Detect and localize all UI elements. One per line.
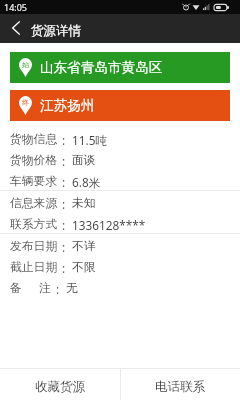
staticText: 车辆要求 [10,174,58,189]
staticText: 未知 [72,196,96,211]
staticText: 无 [66,281,78,296]
button[interactable]: 车辆要求 [10,171,230,192]
button[interactable]: 联系方式 [10,214,230,235]
staticText: 货源详情 [31,23,81,39]
staticText: 收藏货源 [35,379,86,395]
button[interactable]: 备 [10,278,230,299]
staticText: 联系方式 [10,217,58,232]
staticText: 江苏扬州 [40,97,95,114]
staticText: 备 [10,281,22,296]
staticText: 14:05 [4,1,28,13]
staticText: 不限 [72,260,96,275]
button[interactable]: 信息来源 [10,193,230,214]
button[interactable]: 收藏货源 [0,369,120,400]
button[interactable]: 货物信息 [10,129,230,150]
staticText: 截止日期 [10,260,58,275]
button[interactable]: Back [0,14,30,43]
staticText: 1336128**** [72,217,146,233]
staticText: 面谈 [72,153,96,168]
staticText: 山东省青岛市黄岛区 [40,59,163,76]
staticText: : [62,196,66,212]
staticText: 电话联系 [155,379,206,395]
button[interactable]: 终 [10,90,230,121]
staticText: : [62,153,66,169]
staticText: : [62,217,66,233]
staticText: : [56,281,60,297]
staticText: 货物价格 [10,153,58,168]
button[interactable]: 货物价格 [10,150,230,171]
button[interactable]: 发布日期 [10,236,230,257]
staticText: 终 [22,98,29,107]
staticText: 信息来源 [10,196,58,211]
staticText: : [62,239,66,255]
button[interactable]: 始 [10,52,230,83]
staticText: 6.8米 [72,174,101,190]
staticText: : [62,174,66,190]
staticText: : [62,260,66,276]
staticText: 货物信息 [10,132,58,147]
staticText: 注 [39,281,51,296]
staticText: 发布日期 [10,239,58,254]
staticText: 始 [22,60,29,69]
button[interactable]: 电话联系 [120,369,240,400]
staticText: : [62,132,66,148]
staticText: 11.5吨 [72,132,108,148]
staticText: 不详 [72,239,96,254]
button[interactable]: 截止日期 [10,257,230,278]
